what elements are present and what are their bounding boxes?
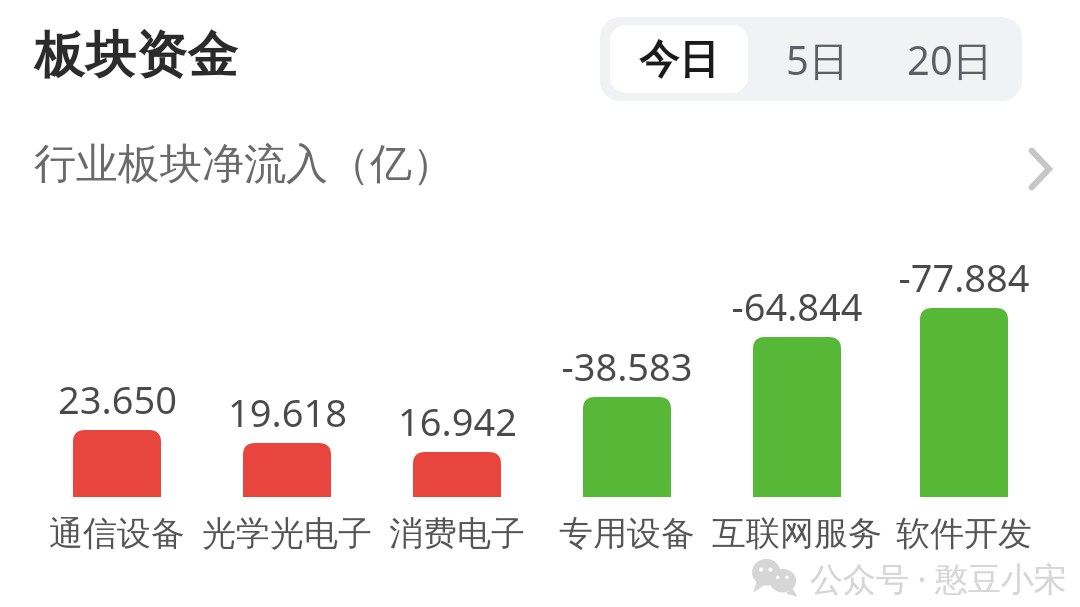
staticText: 19.618 (228, 386, 347, 438)
button[interactable]: 互联网服务 (707, 506, 887, 560)
button[interactable]: 通信设备 (27, 506, 207, 560)
staticText: 5日 (786, 32, 849, 87)
staticText: 消费电子 (389, 512, 525, 555)
staticText: 20日 (907, 32, 993, 87)
staticText: -77.884 (898, 251, 1030, 303)
button[interactable]: 5日 (755, 25, 880, 93)
staticText: 软件开发 (896, 512, 1032, 555)
staticText: 板块资金 (34, 24, 238, 87)
button[interactable]: 光学光电子 (197, 506, 377, 560)
button[interactable]: 消费电子 (367, 506, 547, 560)
button[interactable]: 查看更多 (1012, 138, 1068, 200)
staticText: 今日 (639, 34, 719, 84)
staticText: 通信设备 (49, 512, 185, 555)
staticText: -64.844 (731, 280, 863, 332)
staticText: 16.942 (398, 395, 517, 447)
button[interactable]: 软件开发 (874, 506, 1054, 560)
staticText: 行业板块净流入（亿） (34, 138, 454, 191)
staticText: 光学光电子 (202, 512, 372, 555)
button[interactable]: 今日 (610, 25, 748, 93)
staticText: 23.650 (58, 373, 177, 425)
staticText: 专用设备 (559, 512, 695, 555)
button[interactable]: 专用设备 (537, 506, 717, 560)
staticText: 公众号 · 憨豆小宋 (810, 556, 1068, 600)
staticText: -38.583 (561, 340, 693, 392)
button[interactable]: 20日 (885, 25, 1015, 93)
staticText: 互联网服务 (712, 512, 882, 555)
